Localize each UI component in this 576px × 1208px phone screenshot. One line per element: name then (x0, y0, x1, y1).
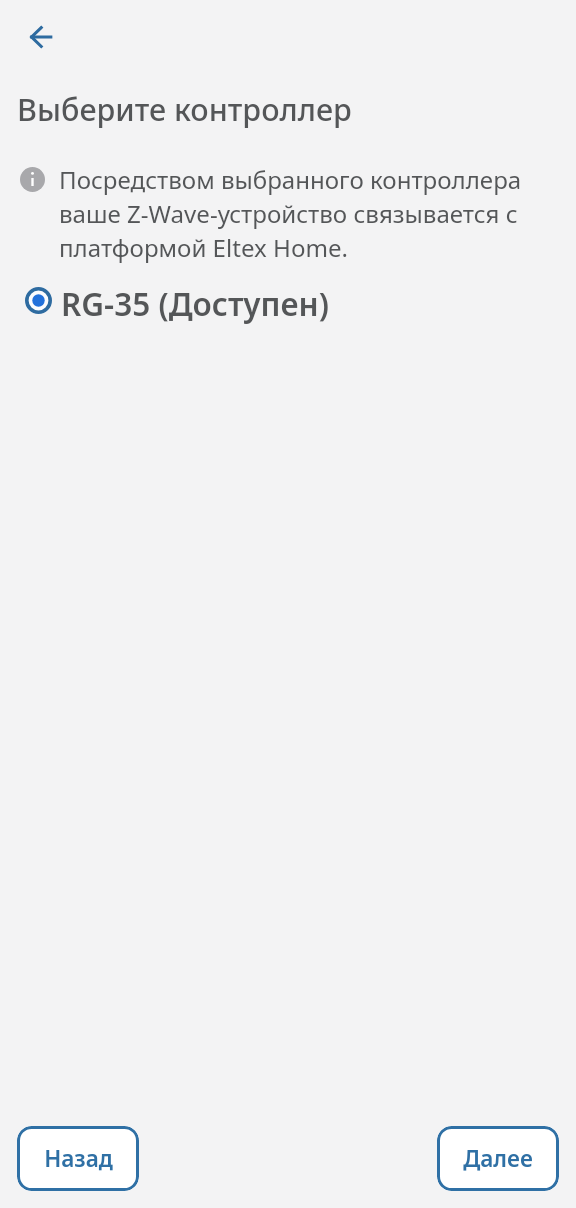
staticText: Далее (463, 1143, 533, 1174)
button[interactable]: Назад (17, 1126, 139, 1191)
staticText: Посредством выбранного контроллера ваше … (59, 163, 559, 264)
staticText: Выберите контроллер (17, 88, 352, 130)
button[interactable]: Back (15, 11, 67, 63)
staticText: RG-35 (Доступен) (61, 282, 329, 325)
staticText: Назад (44, 1143, 113, 1174)
button[interactable]: Далее (437, 1126, 559, 1191)
button[interactable]: RG-35 (Доступен) (0, 278, 576, 329)
